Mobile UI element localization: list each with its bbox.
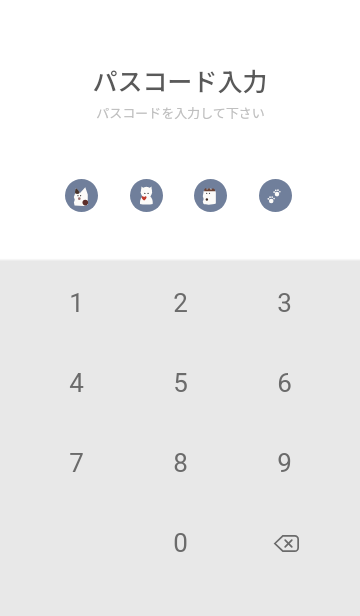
button[interactable]: 5 (140, 351, 220, 415)
button[interactable]: Passcode digit 1 (65, 179, 98, 212)
button[interactable]: Passcode digit 4 (259, 179, 292, 212)
button[interactable]: Passcode digit 2 (130, 179, 163, 212)
button[interactable]: 2 (140, 271, 220, 335)
staticText: 3 (277, 288, 292, 318)
staticText: 7 (69, 448, 84, 478)
button[interactable]: Passcode digit 3 (194, 179, 227, 212)
staticText: パスコード入力 (92, 62, 268, 98)
button[interactable]: 1 (36, 271, 116, 335)
staticText: 1 (69, 288, 84, 318)
staticText: 5 (173, 368, 188, 398)
button[interactable]: 9 (244, 431, 324, 495)
staticText: 0 (173, 528, 188, 558)
staticText: 8 (173, 448, 188, 478)
button[interactable]: 6 (244, 351, 324, 415)
button[interactable]: Delete (244, 511, 324, 575)
button[interactable]: 0 (140, 511, 220, 575)
staticText: パスコードを入力して下さい (96, 103, 265, 122)
staticText: 2 (173, 288, 188, 318)
button[interactable]: 7 (36, 431, 116, 495)
staticText: 6 (277, 368, 292, 398)
button[interactable]: 4 (36, 351, 116, 415)
button[interactable]: 3 (244, 271, 324, 335)
staticText: 4 (69, 368, 84, 398)
staticText: 9 (277, 448, 292, 478)
button[interactable]: 8 (140, 431, 220, 495)
